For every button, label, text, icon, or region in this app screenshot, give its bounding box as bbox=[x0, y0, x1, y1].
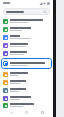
button[interactable] bbox=[0, 49, 53, 57]
button[interactable] bbox=[0, 17, 53, 25]
button[interactable] bbox=[1, 58, 52, 69]
button[interactable]: Back bbox=[7, 108, 16, 117]
button[interactable] bbox=[0, 78, 53, 86]
button[interactable] bbox=[0, 102, 53, 108]
button[interactable]: Home bbox=[22, 108, 31, 117]
button[interactable] bbox=[0, 70, 53, 78]
button[interactable]: Recent apps bbox=[38, 108, 47, 117]
button[interactable] bbox=[0, 86, 53, 94]
button[interactable]: Search settings bbox=[3, 8, 50, 15]
button[interactable] bbox=[0, 41, 53, 49]
button[interactable] bbox=[0, 94, 53, 102]
button[interactable] bbox=[0, 33, 53, 41]
button[interactable] bbox=[0, 25, 53, 33]
